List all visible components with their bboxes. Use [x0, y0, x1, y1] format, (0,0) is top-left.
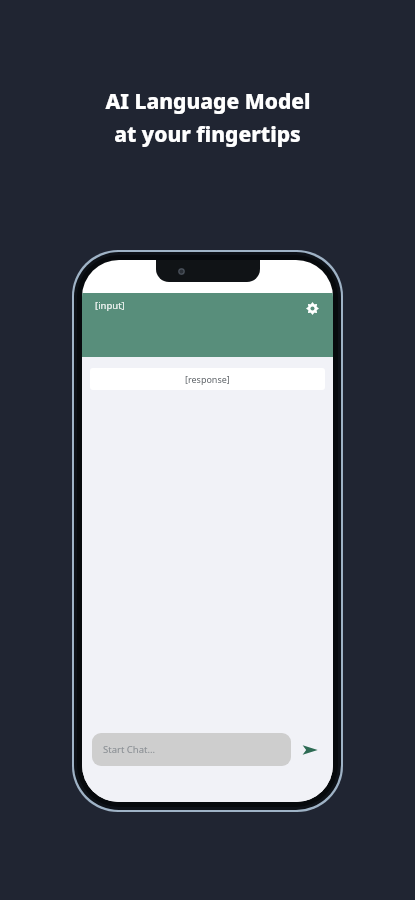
staticText: Start Chat... [103, 743, 156, 756]
staticText: [input] [95, 299, 125, 312]
button[interactable]: Send [295, 735, 325, 765]
staticText: at your fingertips [114, 120, 301, 149]
button[interactable]: [response] [90, 368, 325, 390]
staticText: [response] [185, 373, 230, 385]
button[interactable]: [input] [95, 299, 125, 312]
button[interactable]: Start Chat... [92, 733, 291, 766]
staticText: AI Language Model [105, 87, 311, 116]
button[interactable]: Settings [301, 297, 323, 319]
